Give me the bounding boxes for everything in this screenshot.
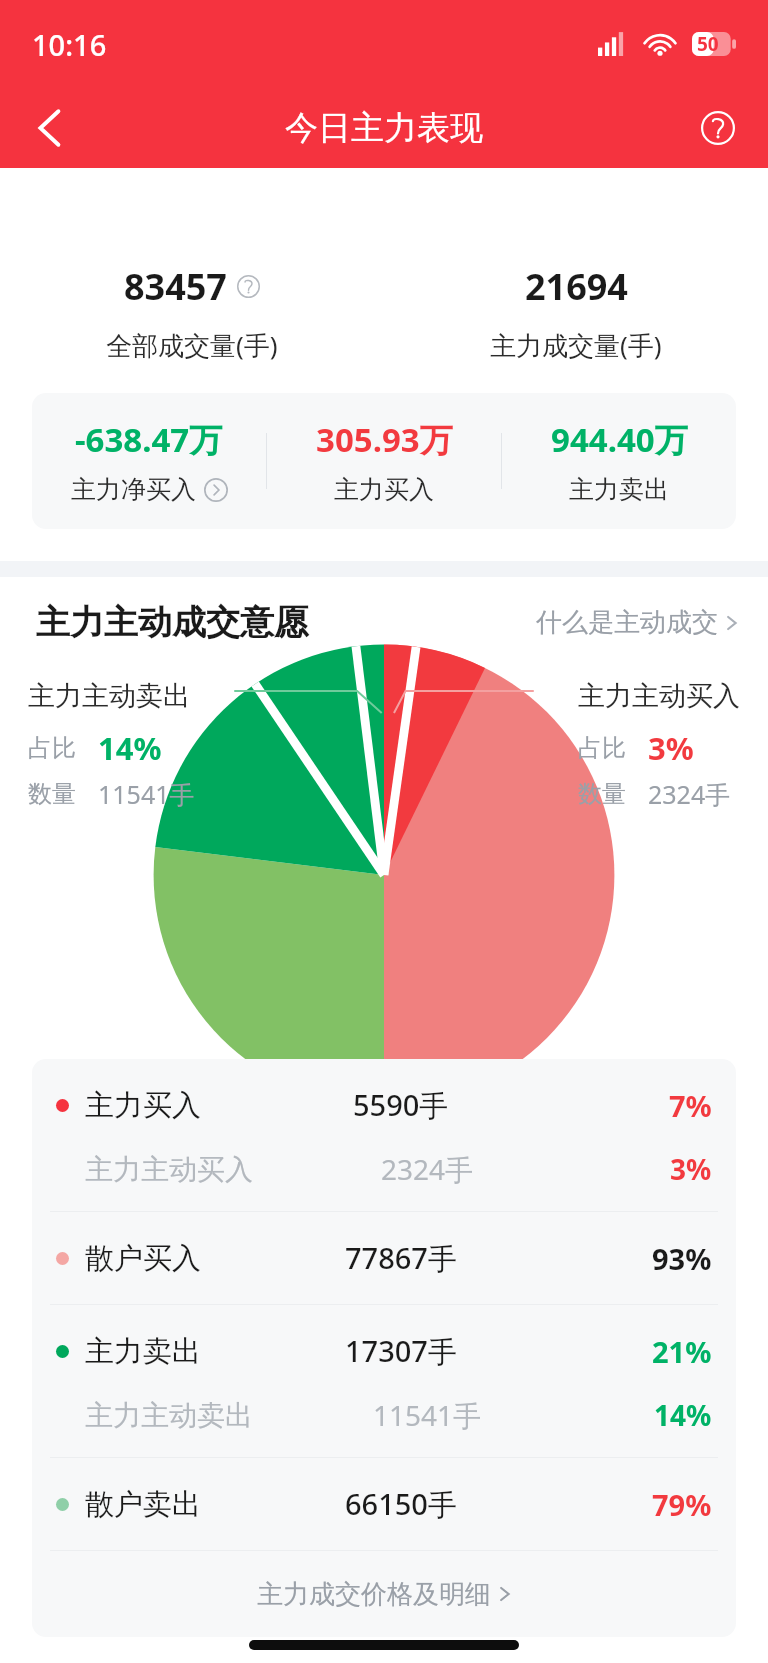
staticText: 数量 [578, 779, 626, 809]
staticText: 主力主动成交意愿 [36, 601, 308, 644]
staticText: 主力卖出 [569, 474, 669, 505]
button[interactable]: 散户卖出 [32, 1470, 736, 1538]
staticText: 主力主动卖出 [28, 679, 190, 713]
button[interactable]: 散户买入 [32, 1224, 736, 1292]
button[interactable]: Info [237, 275, 260, 298]
staticText: 3% [648, 727, 694, 769]
staticText: 93% [652, 1239, 712, 1278]
staticText: 79% [652, 1485, 712, 1524]
staticText: 944.40万 [551, 417, 688, 462]
staticText: 14% [98, 727, 162, 769]
staticText: 全部成交量(手) [106, 327, 278, 363]
staticText: 数量 [28, 779, 76, 809]
staticText: 50 [697, 31, 719, 57]
staticText: 主力主动买入 [85, 1152, 253, 1187]
staticText: 305.93万 [316, 417, 453, 462]
staticText: 21694 [525, 262, 628, 311]
staticText: 14% [654, 1396, 712, 1434]
staticText: 3% [670, 1150, 712, 1188]
staticText: 66150手 [345, 1484, 457, 1524]
button[interactable]: 主力主动买入 [32, 1139, 736, 1199]
staticText: 主力主动卖出 [85, 1398, 253, 1433]
staticText: 21% [652, 1332, 712, 1371]
staticText: 散户买入 [85, 1240, 201, 1277]
staticText: 散户卖出 [85, 1486, 201, 1523]
button[interactable]: 什么是主动成交 [536, 606, 738, 639]
button[interactable]: Help [668, 88, 768, 168]
staticText: 主力买入 [334, 474, 434, 505]
staticText: 2324手 [648, 777, 731, 811]
staticText: 主力主动买入 [578, 679, 740, 713]
staticText: 83457 [124, 262, 227, 311]
staticText: 今日主力表现 [100, 107, 668, 149]
button[interactable]: 主力买入 [32, 1071, 736, 1139]
staticText: 11541手 [98, 777, 195, 811]
button[interactable]: Back [0, 88, 100, 168]
staticText: 10:16 [32, 25, 107, 64]
button[interactable]: 944.40万 [502, 417, 736, 505]
staticText: 5590手 [353, 1085, 449, 1125]
staticText: 2324手 [381, 1150, 474, 1188]
staticText: 17307手 [345, 1331, 457, 1371]
staticText: -638.47万 [75, 417, 223, 462]
staticText: 主力买入 [85, 1087, 201, 1124]
button[interactable]: 305.93万 [267, 417, 501, 505]
staticText: 主力成交量(手) [490, 327, 662, 363]
staticText: 77867手 [345, 1238, 457, 1278]
staticText: 主力净买入 [71, 474, 196, 505]
button[interactable]: -638.47万 [32, 417, 266, 505]
staticText: 什么是主动成交 [536, 606, 718, 639]
button[interactable]: 主力主动卖出 [32, 1385, 736, 1445]
staticText: 7% [669, 1086, 712, 1125]
staticText: 主力卖出 [85, 1333, 201, 1370]
button[interactable]: 主力成交价格及明细 [32, 1551, 736, 1637]
button[interactable]: 主力卖出 [32, 1317, 736, 1385]
staticText: 占比 [578, 733, 626, 763]
staticText: 11541手 [373, 1396, 482, 1434]
staticText: 主力成交价格及明细 [257, 1578, 491, 1611]
staticText: 占比 [28, 733, 76, 763]
